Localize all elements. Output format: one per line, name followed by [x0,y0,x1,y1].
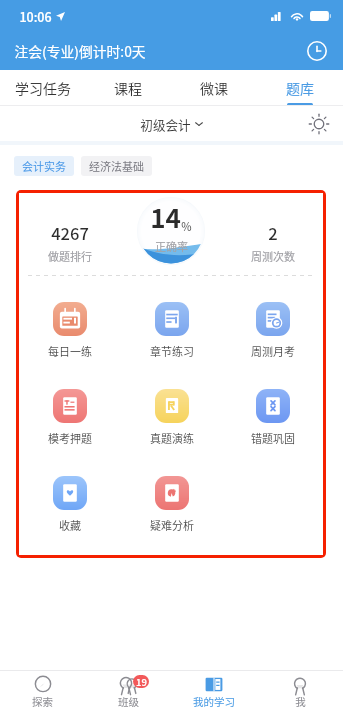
staticText: 正确率 [155,238,188,254]
staticText: 10:06 [19,7,52,25]
button[interactable]: 模考押题 [48,389,92,446]
staticText: 疑难分析 [150,517,194,533]
staticText: 周测月考 [251,343,295,359]
staticText: 探索 [32,694,53,709]
staticText: 初级会计 [140,115,191,133]
button[interactable]: 会计实务 [14,156,74,176]
button[interactable]: 章节练习 [150,302,194,359]
button[interactable]: 初级会计 [140,115,203,133]
button[interactable]: 周测月考 [251,302,295,359]
button[interactable]: 题库 [257,70,343,106]
button[interactable]: 2 [222,221,323,264]
staticText: 2 [268,221,278,245]
button[interactable]: 学习任务 [0,70,85,106]
button[interactable]: Countdown clock [303,37,331,65]
button[interactable]: 真题演练 [150,389,194,446]
button[interactable]: 4267 [19,221,121,264]
staticText: 14 [150,198,181,236]
staticText: 我 [295,694,306,709]
button[interactable]: 疑难分析 [150,476,194,533]
button[interactable]: 经济法基础 [81,156,152,176]
staticText: 微课 [200,78,228,98]
staticText: 课程 [114,78,142,98]
button[interactable]: 错题巩固 [251,389,295,446]
staticText: 经济法基础 [89,158,144,174]
button[interactable]: 每日一练 [48,302,92,359]
staticText: 注会(专业)倒计时:0天 [14,41,146,61]
button[interactable]: Brightness [306,111,332,137]
button[interactable]: 探索 [0,671,85,718]
staticText: 4267 [51,221,89,245]
button[interactable]: 收藏 [53,476,87,533]
staticText: 章节练习 [150,343,194,359]
button[interactable]: 我 [257,671,343,718]
staticText: 做题排行 [48,248,92,264]
staticText: 班级 [118,694,139,709]
staticText: 会计实务 [22,158,66,174]
button[interactable]: 我的学习 [171,671,257,718]
staticText: 题库 [286,78,314,98]
button[interactable]: 19 [85,671,171,718]
staticText: 学习任务 [15,78,71,98]
button[interactable]: 微课 [171,70,257,106]
staticText: 收藏 [59,517,81,533]
staticText: 周测次数 [251,248,295,264]
button[interactable]: 课程 [85,70,171,106]
staticText: 19 [136,675,147,688]
staticText: 我的学习 [193,694,235,709]
staticText: 模考押题 [48,430,92,446]
staticText: % [181,218,192,234]
staticText: 真题演练 [150,430,194,446]
staticText: 每日一练 [48,343,92,359]
staticText: 错题巩固 [251,430,295,446]
